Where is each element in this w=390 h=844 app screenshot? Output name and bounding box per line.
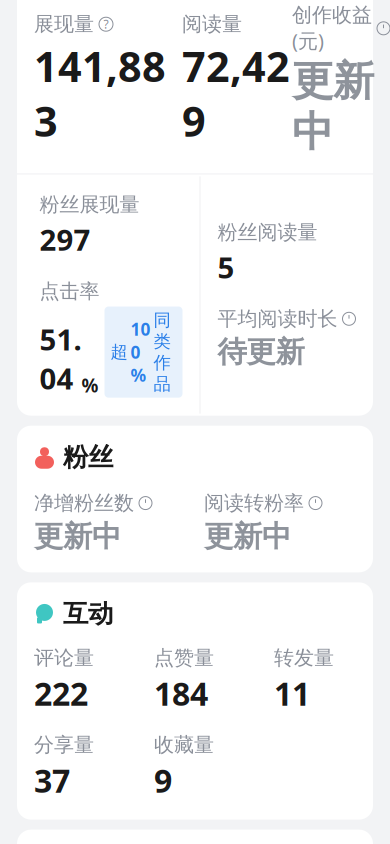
staticText: % [81,373,98,398]
staticText: 297 [39,220,90,259]
staticText: 100% [130,318,150,387]
staticText: 待更新 [217,334,304,370]
staticText: 评论量 [34,645,94,670]
staticText: 9 [154,759,172,802]
staticText: 粉丝 [63,442,113,473]
staticText: 分享量 [34,733,94,757]
staticText: 184 [154,672,208,715]
staticText: 展现量 [34,12,94,36]
staticText: 阅读量 [182,12,242,36]
staticText: 收藏量 [154,733,214,757]
staticText: 5 [217,248,234,287]
staticText: 点赞量 [154,645,214,670]
staticText: 更新中 [292,56,374,157]
staticText: 51.04 [39,320,81,398]
staticText: 创作收益(元) [292,3,372,54]
staticText: 阅读转粉率 [204,491,304,515]
staticText: 超 [110,341,127,363]
staticText: 222 [34,672,88,715]
staticText: ? [103,16,108,32]
staticText: 72,429 [182,38,290,148]
staticText: 更新中 [204,518,291,554]
staticText: 平均阅读时长 [217,306,337,331]
staticText: 点击率 [39,279,99,303]
staticText: 同类作品 [153,309,170,395]
staticText: 粉丝展现量 [39,192,139,217]
staticText: 37 [34,759,70,802]
staticText: 粉丝阅读量 [217,220,317,245]
staticText: 转发量 [274,645,334,670]
staticText: 11 [274,672,310,715]
button[interactable]: 用户画像 [269,830,377,844]
staticText: 141,883 [34,38,166,148]
staticText: 更新中 [34,518,121,554]
staticText: 净增粉丝数 [34,491,134,515]
staticText: 互动 [63,598,113,629]
